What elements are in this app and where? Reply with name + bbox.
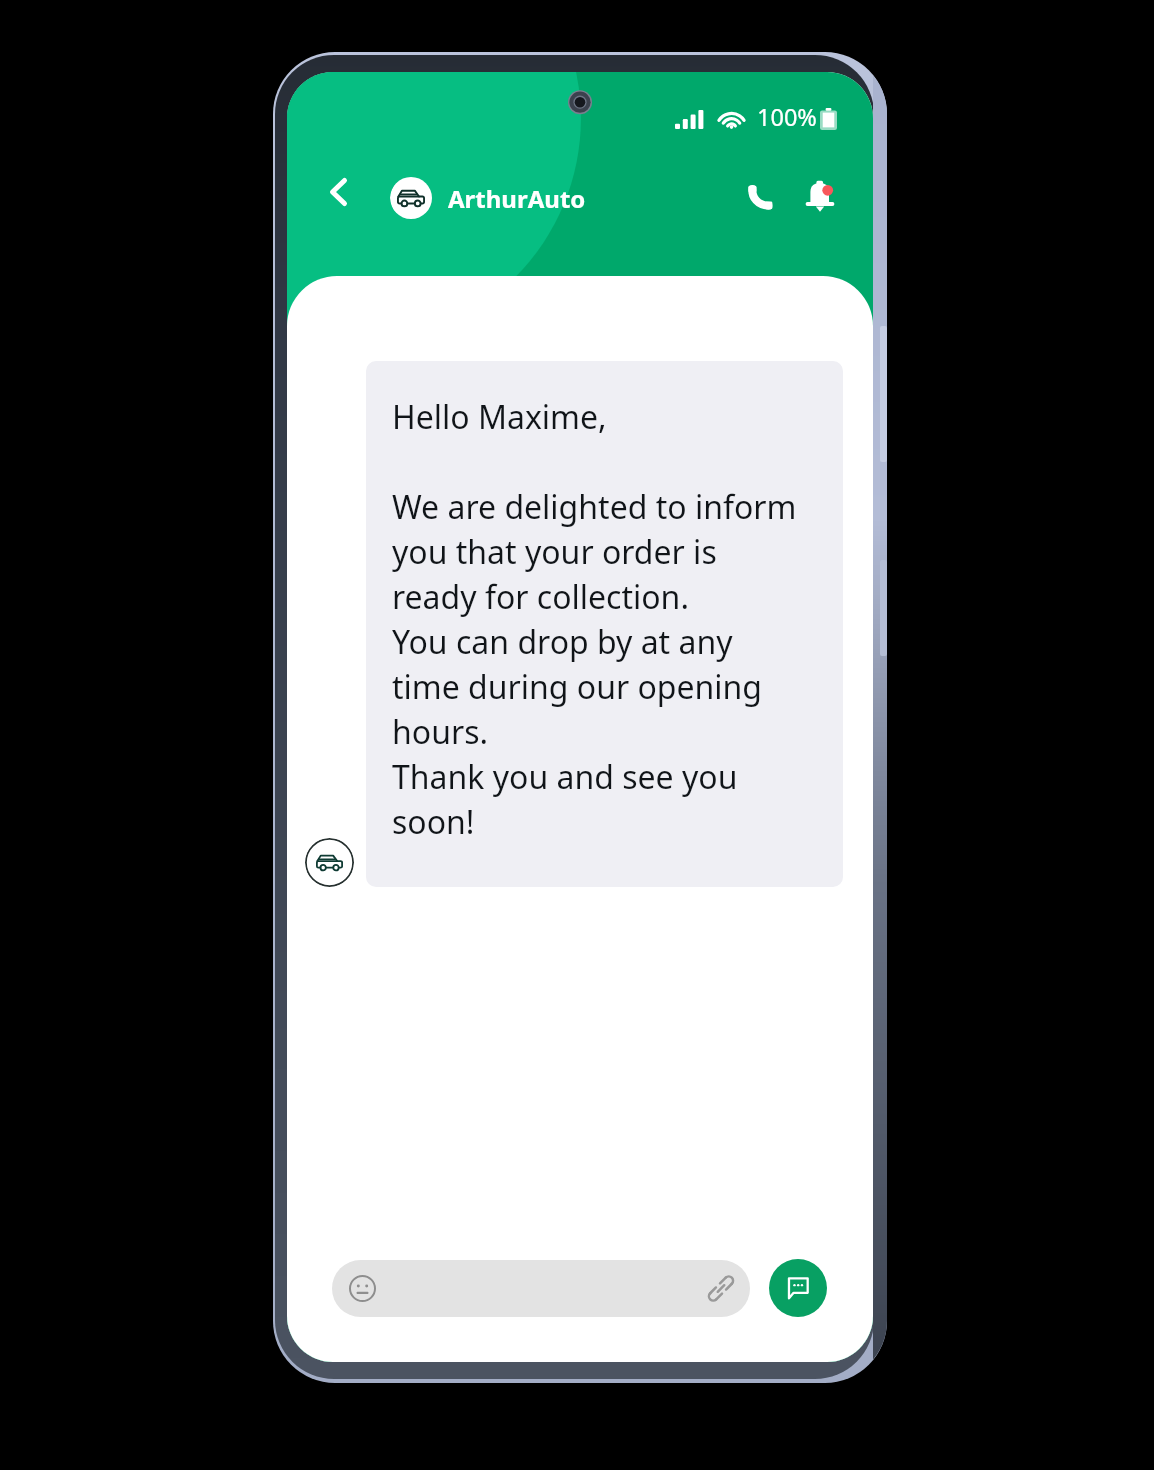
staticText: ArthurAuto <box>448 182 586 215</box>
button[interactable]: Notifications <box>796 173 844 221</box>
button[interactable]: Back <box>314 168 362 216</box>
button[interactable]: Send message <box>769 1259 827 1317</box>
staticText: Hello Maxime, We are delighted to inform… <box>392 395 803 844</box>
button[interactable]: Call <box>736 173 784 221</box>
button[interactable]: Hello Maxime, We are delighted to inform… <box>366 361 843 887</box>
button[interactable] <box>332 1260 750 1317</box>
button[interactable]: ArthurAuto <box>390 175 586 221</box>
staticText: 100% <box>757 101 817 133</box>
